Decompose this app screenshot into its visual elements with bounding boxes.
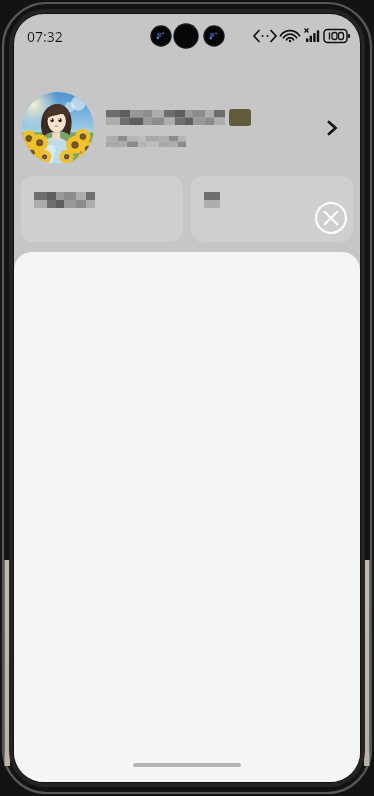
button[interactable]: Close bbox=[314, 201, 348, 235]
staticText: 07:32 bbox=[27, 27, 63, 46]
button[interactable] bbox=[14, 252, 360, 782]
button[interactable] bbox=[21, 176, 183, 242]
button[interactable] bbox=[191, 176, 353, 242]
button[interactable]: Open profile bbox=[310, 106, 354, 150]
button[interactable]: Open profile bbox=[14, 88, 360, 168]
